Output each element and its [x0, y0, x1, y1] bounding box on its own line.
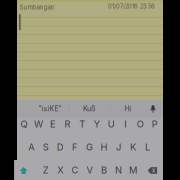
button[interactable]: W	[31, 114, 46, 135]
button[interactable]: B	[97, 160, 111, 180]
staticText: N	[115, 165, 122, 176]
button[interactable]: D	[53, 137, 68, 158]
button[interactable]: M	[126, 160, 140, 180]
button[interactable]: L	[140, 137, 155, 158]
button[interactable]: Delete	[143, 160, 162, 180]
staticText: Y	[94, 119, 100, 130]
button[interactable]: H	[97, 137, 111, 158]
staticText: Kuß	[83, 105, 95, 113]
button[interactable]: K	[126, 137, 140, 158]
staticText: D	[57, 142, 64, 153]
button[interactable]: Hi	[108, 100, 148, 117]
button[interactable]: P	[147, 114, 162, 135]
staticText: M	[129, 165, 137, 176]
staticText: S	[43, 142, 49, 153]
button[interactable]: N	[111, 160, 126, 180]
button[interactable]: I	[118, 114, 133, 135]
button[interactable]: Sumbangan	[19, 2, 69, 12]
staticText: "isiKE"	[38, 105, 61, 113]
staticText: H	[100, 142, 107, 153]
button[interactable]: G	[82, 137, 97, 158]
button[interactable]: Y	[89, 114, 104, 135]
button[interactable]: "isiKE"	[30, 100, 70, 117]
button[interactable]: F	[68, 137, 82, 158]
staticText: I	[124, 119, 127, 130]
button[interactable]: O	[133, 114, 147, 135]
button[interactable]: A	[24, 137, 39, 158]
staticText: x	[152, 167, 155, 174]
staticText: U	[108, 119, 115, 130]
button[interactable]: Shift	[14, 160, 33, 180]
button[interactable]: U	[104, 114, 118, 135]
button[interactable]: Z	[38, 160, 53, 180]
staticText: F	[72, 142, 78, 153]
button[interactable]: R	[60, 114, 75, 135]
button[interactable]: Q	[17, 114, 31, 135]
button[interactable]: J	[111, 137, 126, 158]
staticText: C	[71, 165, 78, 176]
staticText: E	[50, 119, 56, 130]
staticText: P	[152, 119, 158, 130]
button[interactable]: E	[46, 114, 60, 135]
staticText: Hi	[124, 105, 131, 113]
staticText: B	[101, 165, 107, 176]
staticText: 01/07/2016 23.56	[108, 3, 155, 10]
staticText: R	[65, 119, 71, 130]
button[interactable]: Dictate	[143, 100, 163, 117]
staticText: T	[79, 119, 85, 130]
staticText: W	[34, 119, 43, 130]
button[interactable]: X	[53, 160, 68, 180]
staticText: A	[28, 142, 34, 153]
staticText: Sumbangan	[19, 3, 54, 11]
staticText: L	[145, 142, 150, 153]
staticText: Q	[21, 119, 28, 130]
staticText: O	[137, 119, 144, 130]
staticText: X	[57, 165, 63, 176]
button[interactable]: C	[68, 160, 82, 180]
button[interactable]: V	[82, 160, 97, 180]
button[interactable]: T	[75, 114, 89, 135]
staticText: Z	[43, 165, 49, 176]
staticText: G	[86, 142, 93, 153]
button[interactable]: S	[38, 137, 53, 158]
staticText: V	[86, 165, 92, 176]
button[interactable]: Kuß	[69, 100, 109, 117]
staticText: J	[116, 142, 121, 153]
staticText: K	[130, 142, 136, 153]
